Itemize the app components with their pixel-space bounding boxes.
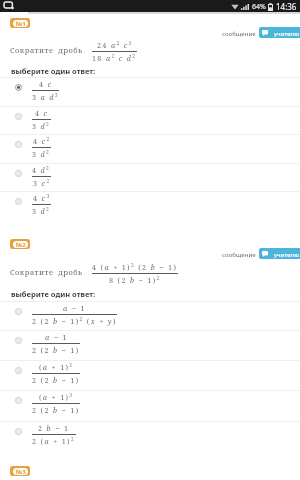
staticText: 64% <box>252 2 266 12</box>
button[interactable]: 4 c <box>0 77 300 106</box>
other: Message teacher <box>262 251 268 257</box>
staticText: 3 d2 <box>32 206 51 216</box>
staticText: 4 (a + 1)2 (2 b − 1) <box>92 262 178 272</box>
staticText: учителю <box>274 250 300 258</box>
staticText: 2 (2 b − 1) <box>32 405 80 415</box>
button[interactable]: 4 c <box>0 106 300 135</box>
button[interactable]: a − 1 <box>0 330 300 360</box>
staticText: 14:36 <box>276 1 297 12</box>
button[interactable]: №2 <box>10 239 30 249</box>
button[interactable]: (a + 1)2 <box>0 360 300 390</box>
staticText: 4 c <box>35 108 49 118</box>
button[interactable]: a − 1 <box>0 301 300 330</box>
staticText: 4 c3 <box>33 193 51 203</box>
staticText: 3 d2 <box>32 121 51 131</box>
staticText: 2 (2 b − 1) <box>32 375 80 385</box>
staticText: 2 b − 1 <box>38 423 70 433</box>
staticText: выберите один ответ: <box>11 289 96 299</box>
staticText: выберите один ответ: <box>11 66 96 76</box>
staticText: учителю <box>274 29 300 37</box>
staticText: Сократите дробь <box>10 45 83 55</box>
staticText: 3 a d3 <box>32 92 59 102</box>
staticText: 4 c <box>39 79 53 89</box>
staticText: №1 <box>16 20 26 27</box>
button[interactable]: Message teacher <box>259 248 300 259</box>
staticText: Сократите дробь <box>10 267 83 277</box>
button[interactable]: 4 c3 <box>0 191 300 220</box>
other: Screenshot captured <box>4 2 15 10</box>
staticText: 3 d2 <box>32 149 51 159</box>
button[interactable]: №3 <box>10 466 30 476</box>
staticText: a − 1 <box>45 332 68 342</box>
staticText: 8 (2 b − 1)2 <box>109 275 161 285</box>
staticText: 4 c2 <box>33 136 51 146</box>
staticText: 2 (a + 1)2 <box>32 436 76 446</box>
staticText: (a + 1)3 <box>39 392 74 402</box>
button[interactable]: (a + 1)3 <box>0 390 300 421</box>
staticText: (a + 1)2 <box>39 362 74 372</box>
staticText: a − 1 <box>63 303 86 313</box>
button[interactable]: №1 <box>10 18 30 28</box>
staticText: сообщение <box>222 29 256 37</box>
button[interactable]: 4 d2 <box>0 163 300 192</box>
staticText: 2 (2 b − 1)2 (x + y) <box>32 316 117 326</box>
staticText: 3 c2 <box>33 178 51 188</box>
staticText: 2 (2 b − 1) <box>32 345 80 355</box>
button[interactable]: 2 b − 1 <box>0 421 300 452</box>
staticText: №3 <box>16 468 26 475</box>
staticText: сообщение <box>222 250 256 258</box>
other: Message teacher <box>262 30 268 36</box>
staticText: №2 <box>16 241 26 248</box>
button[interactable]: 4 c2 <box>0 134 300 163</box>
button[interactable]: Message teacher <box>259 27 300 38</box>
staticText: 24 a2 c3 <box>97 40 133 50</box>
staticText: 4 d2 <box>32 165 51 175</box>
staticText: 18 a2 c d2 <box>92 53 137 63</box>
